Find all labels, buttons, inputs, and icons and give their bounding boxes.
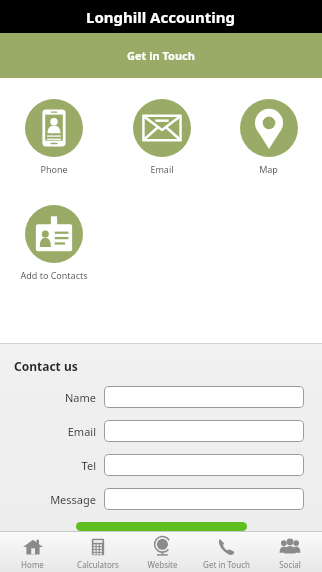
staticText: Website [147,559,178,570]
staticText: Calculators [77,559,119,570]
button[interactable]: Calculators [65,531,130,572]
staticText: Get in Touch [127,48,195,63]
button[interactable]: Email [108,99,215,175]
button[interactable]: Get in Touch [194,531,258,572]
button[interactable]: Get in Touch [0,33,322,78]
staticText: Email [67,424,96,439]
staticText: Contact us [14,358,78,374]
button[interactable]: Website [130,531,194,572]
staticText: Home [21,559,44,570]
button[interactable]: Phone [0,99,108,175]
staticText: Add to Contacts [20,269,88,281]
button[interactable] [76,522,247,531]
button[interactable]: Social [258,531,322,572]
staticText: Name [64,390,96,405]
button[interactable]: Add to Contacts [0,205,108,281]
staticText: Social [279,559,301,570]
staticText: Get in Touch [203,559,250,570]
staticText: Map [259,163,278,175]
button[interactable] [104,420,304,442]
staticText: Longhill Accounting [86,7,236,27]
button[interactable] [104,386,304,408]
button[interactable]: Map [215,99,322,175]
button[interactable] [104,488,304,510]
staticText: Phone [40,163,68,175]
staticText: Tel [81,458,96,473]
button[interactable] [104,454,304,476]
staticText: Email [150,163,174,175]
staticText: Message [50,492,96,507]
button[interactable]: Home [0,531,65,572]
